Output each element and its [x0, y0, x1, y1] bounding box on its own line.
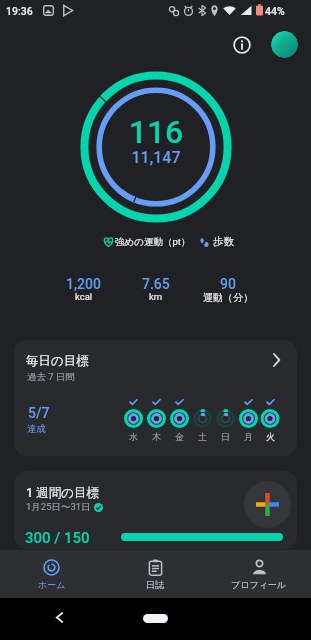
staticText: 90	[220, 276, 236, 292]
button[interactable]: 毎日の目標	[14, 340, 297, 456]
staticText: 300 / 150	[25, 529, 90, 547]
staticText: 1 週間の目標	[26, 485, 100, 501]
staticText: プロフィール	[231, 579, 287, 590]
staticText: 日誌	[146, 579, 164, 590]
staticText: 日	[221, 431, 230, 442]
staticText: 11,147	[76, 148, 236, 167]
staticText: 5/7	[28, 405, 50, 421]
staticText: 火	[266, 431, 275, 442]
button[interactable]: 90	[192, 276, 264, 305]
button[interactable]: 1,200	[47, 276, 120, 303]
staticText: 7.65	[142, 276, 170, 292]
staticText: ホーム	[38, 579, 66, 590]
staticText: 水	[129, 431, 138, 442]
staticText: 歩数	[213, 235, 234, 248]
staticText: 1月25日〜31日	[26, 501, 91, 513]
staticText: 毎日の目標	[26, 353, 89, 369]
staticText: 19:36	[6, 5, 33, 17]
button[interactable]: Account	[271, 31, 298, 58]
staticText: km	[149, 291, 163, 302]
button[interactable]: 7.65	[120, 276, 192, 303]
staticText: 過去 7 日間	[27, 371, 76, 383]
staticText: 月	[244, 431, 253, 442]
button[interactable]: Add	[244, 481, 291, 528]
staticText: 運動（分）	[203, 291, 253, 304]
staticText: 達成	[27, 423, 46, 435]
button[interactable]: 1 週間の目標	[14, 471, 297, 549]
staticText: 強めの運動（pt）	[115, 236, 191, 248]
button[interactable]: 強めの運動（pt）	[103, 231, 191, 252]
staticText: kcal	[75, 291, 93, 302]
button[interactable]: Info	[227, 30, 256, 59]
staticText: 木	[152, 431, 161, 442]
button[interactable]: 日誌	[103, 550, 207, 598]
staticText: 116	[76, 113, 236, 151]
staticText: 土	[198, 431, 207, 442]
button[interactable]: 歩数	[200, 231, 234, 252]
button[interactable]: プロフィール	[207, 550, 311, 598]
staticText: 1,200	[66, 276, 101, 292]
button[interactable]: ホーム	[0, 550, 103, 598]
staticText: 44%	[265, 5, 285, 17]
staticText: 金	[175, 431, 184, 442]
